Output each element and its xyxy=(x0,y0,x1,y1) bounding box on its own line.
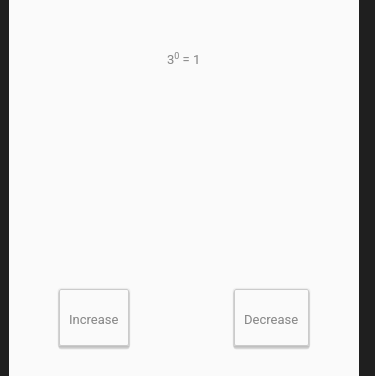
staticText: 30 = 1 xyxy=(167,51,201,67)
staticText: Increase xyxy=(69,312,119,327)
staticText: Decrease xyxy=(244,312,299,327)
button[interactable]: Increase xyxy=(59,289,129,346)
button[interactable]: Decrease xyxy=(234,289,309,346)
